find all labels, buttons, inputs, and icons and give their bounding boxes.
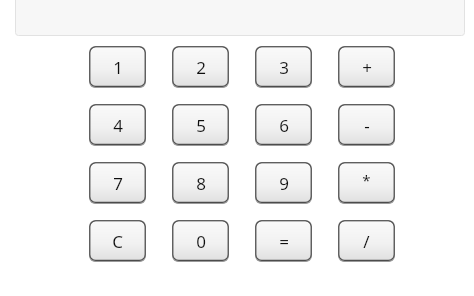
button[interactable]: = bbox=[255, 220, 312, 262]
button[interactable]: 6 bbox=[255, 104, 312, 146]
button[interactable]: / bbox=[338, 220, 395, 262]
button[interactable]: 1 bbox=[89, 46, 146, 88]
staticText: = bbox=[279, 230, 289, 253]
staticText: 9 bbox=[279, 172, 289, 195]
button[interactable] bbox=[15, 0, 465, 36]
staticText: 5 bbox=[196, 114, 206, 137]
staticText: 6 bbox=[279, 114, 289, 137]
button[interactable]: 5 bbox=[172, 104, 229, 146]
button[interactable]: 7 bbox=[89, 162, 146, 204]
button[interactable]: C bbox=[89, 220, 146, 262]
button[interactable]: 9 bbox=[255, 162, 312, 204]
staticText: 0 bbox=[196, 230, 206, 253]
staticText: 8 bbox=[196, 172, 206, 195]
button[interactable]: 3 bbox=[255, 46, 312, 88]
staticText: - bbox=[364, 114, 370, 137]
button[interactable]: * bbox=[338, 162, 395, 204]
staticText: + bbox=[362, 56, 372, 79]
staticText: C bbox=[112, 230, 123, 253]
staticText: 7 bbox=[113, 172, 123, 195]
staticText: / bbox=[363, 230, 370, 253]
staticText: 3 bbox=[279, 56, 289, 79]
staticText: * bbox=[362, 170, 371, 190]
button[interactable]: + bbox=[338, 46, 395, 88]
button[interactable]: 0 bbox=[172, 220, 229, 262]
button[interactable]: 4 bbox=[89, 104, 146, 146]
staticText: 2 bbox=[196, 56, 206, 79]
button[interactable]: 2 bbox=[172, 46, 229, 88]
button[interactable]: 8 bbox=[172, 162, 229, 204]
staticText: 1 bbox=[113, 56, 123, 79]
button[interactable]: - bbox=[338, 104, 395, 146]
staticText: 4 bbox=[113, 114, 123, 137]
